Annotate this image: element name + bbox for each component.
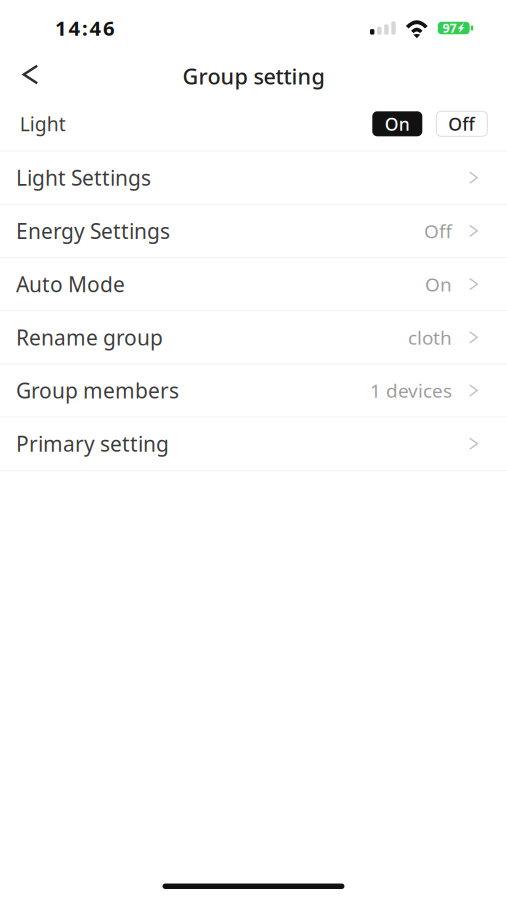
staticText: Energy Settings bbox=[16, 217, 170, 245]
button[interactable]: Auto Mode bbox=[0, 258, 507, 310]
staticText: On bbox=[425, 271, 452, 297]
staticText: Light bbox=[20, 111, 66, 137]
staticText: Auto Mode bbox=[16, 270, 125, 298]
staticText: 97 bbox=[443, 19, 457, 37]
staticText: Light Settings bbox=[16, 163, 151, 192]
button[interactable]: Back bbox=[0, 55, 58, 97]
button[interactable]: On bbox=[372, 111, 422, 136]
button[interactable]: Primary setting bbox=[0, 418, 507, 470]
staticText: Off bbox=[448, 112, 475, 136]
staticText: cloth bbox=[408, 324, 452, 350]
button[interactable]: Rename group bbox=[0, 311, 507, 363]
button[interactable]: Energy Settings bbox=[0, 205, 507, 257]
staticText: 1 devices bbox=[370, 378, 452, 403]
button[interactable]: Light Settings bbox=[0, 152, 507, 204]
staticText: Group members bbox=[16, 376, 179, 405]
staticText: Rename group bbox=[16, 323, 163, 351]
button[interactable]: Off bbox=[436, 111, 487, 136]
staticText: 14:46 bbox=[55, 14, 115, 42]
staticText: Primary setting bbox=[16, 429, 169, 458]
staticText: Off bbox=[424, 218, 452, 244]
staticText: Group setting bbox=[182, 61, 324, 91]
staticText: On bbox=[385, 112, 410, 136]
button[interactable]: Group members bbox=[0, 364, 507, 417]
